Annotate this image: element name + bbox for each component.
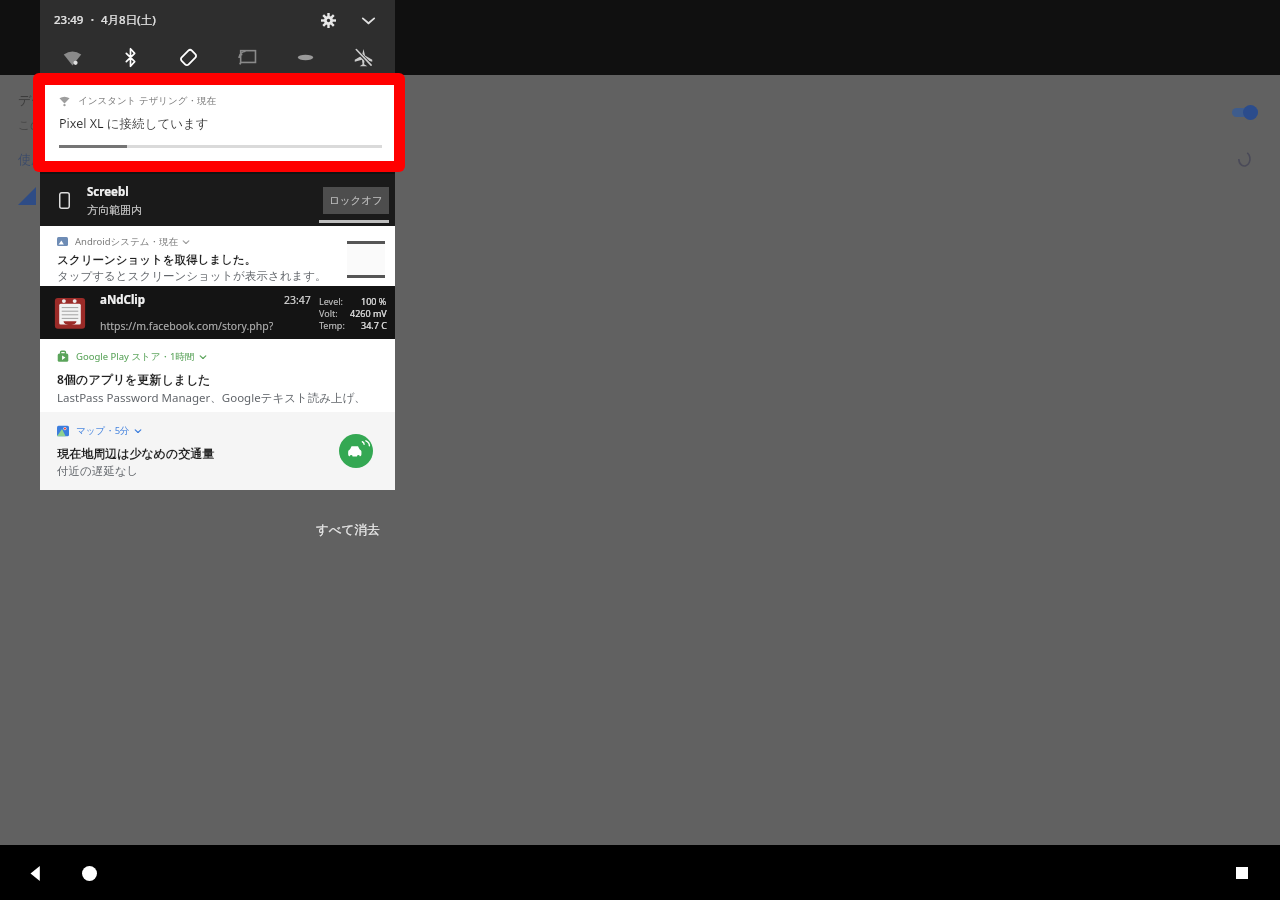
- button[interactable]: Recents: [1228, 859, 1256, 887]
- staticText: 付近の遅延なし: [57, 464, 139, 478]
- staticText: 34.7 C: [361, 319, 387, 331]
- button[interactable]: [40, 75, 395, 172]
- staticText: Androidシステム・現在: [75, 235, 178, 248]
- staticText: マップ・5分: [76, 424, 130, 437]
- button[interactable]: Back: [22, 859, 50, 887]
- staticText: すべて消去: [316, 522, 380, 538]
- button[interactable]: Cast: [225, 40, 269, 75]
- staticText: 方向範囲内: [87, 203, 142, 217]
- staticText: Google Play ストア・1時間: [76, 350, 195, 363]
- staticText: LastPass Password Manager、Googleテキスト読み上げ…: [57, 390, 383, 406]
- staticText: 4260 mV: [350, 307, 387, 319]
- staticText: タップするとスクリーンショットが表示されます。: [57, 269, 327, 283]
- staticText: ロックオフ: [329, 194, 383, 207]
- button[interactable]: Google Play ストア・1時間: [40, 339, 395, 412]
- staticText: データ通信: [18, 92, 84, 108]
- button[interactable]: Androidシステム・現在: [40, 226, 395, 286]
- staticText: Screebl: [87, 184, 129, 200]
- button[interactable]: Auto rotate: [166, 40, 210, 75]
- button[interactable]: Screebl: [40, 174, 395, 226]
- button[interactable]: Home: [75, 859, 103, 887]
- staticText: 23:47: [284, 293, 311, 307]
- staticText: aNdClip: [100, 292, 146, 308]
- staticText: 使用: [18, 151, 44, 167]
- button[interactable]: Directions: [339, 434, 373, 468]
- button[interactable]: Back: [18, 23, 48, 53]
- staticText: Volt:: [319, 307, 338, 319]
- button[interactable]: Airplane mode: [341, 40, 385, 75]
- staticText: https://m.facebook.com/story.php?story_f…: [100, 319, 311, 333]
- button[interactable]: インスタント テザリング・現在: [45, 85, 394, 161]
- button[interactable]: aNdClip: [40, 286, 395, 339]
- staticText: 100 %: [361, 295, 387, 307]
- staticText: 8個のアプリを更新しました: [57, 371, 211, 387]
- button[interactable]: Settings: [315, 7, 341, 33]
- staticText: Level:: [319, 295, 343, 307]
- staticText: 23:49 ・ 4月8日(土): [54, 12, 156, 28]
- button[interactable]: Expand: [355, 7, 381, 33]
- staticText: 現在地周辺は少なめの交通量: [57, 446, 215, 461]
- button[interactable]: ロックオフ: [323, 187, 389, 214]
- staticText: Pixel XL に接続しています: [59, 115, 209, 132]
- staticText: この端末が対応した他の端末を検出します: [18, 117, 249, 132]
- button[interactable]: すべて消去: [310, 518, 386, 542]
- staticText: インスタント テザリング・現在: [78, 94, 216, 107]
- staticText: Temp:: [319, 319, 345, 331]
- button[interactable]: 使用: [18, 151, 1280, 167]
- button[interactable]: データ通信: [18, 92, 1280, 132]
- button[interactable]: Wi-Fi: [50, 40, 94, 75]
- button[interactable]: マップ・5分: [40, 412, 395, 490]
- staticText: スクリーンショットを取得しました。: [57, 253, 257, 267]
- button[interactable]: Bluetooth: [108, 40, 152, 75]
- button[interactable]: Flashlight: [283, 40, 327, 75]
